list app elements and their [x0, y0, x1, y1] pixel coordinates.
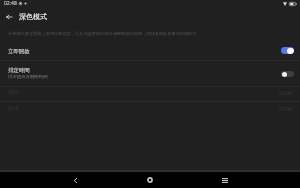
staticText: 深色模式 — [19, 12, 47, 21]
button[interactable]: Recent apps — [216, 172, 234, 188]
staticText: 排定時間 — [8, 67, 30, 74]
staticText: 結束 — [8, 105, 19, 112]
staticText: 排定開啟及關閉時間 — [8, 74, 48, 80]
staticText: 開始 — [8, 89, 19, 96]
button[interactable]: 立即開啟 — [0, 40, 300, 60]
button[interactable]: Back — [66, 172, 84, 188]
staticText: 02:48 — [4, 0, 17, 7]
staticText: 深色模式會在螢幕上套用深色背景，可在光線昏暗的地方減輕眼睛的負擔，同時還能延長電… — [8, 31, 201, 36]
button[interactable]: Navigate up — [0, 8, 17, 25]
button[interactable]: Home — [141, 172, 159, 188]
staticText: 22:00 — [279, 89, 293, 96]
button[interactable]: Off — [281, 71, 294, 77]
button[interactable]: On — [281, 47, 294, 54]
button[interactable]: 排定時間 — [0, 61, 300, 86]
staticText: 立即開啟 — [8, 48, 30, 55]
staticText: 07:00 — [279, 105, 293, 112]
